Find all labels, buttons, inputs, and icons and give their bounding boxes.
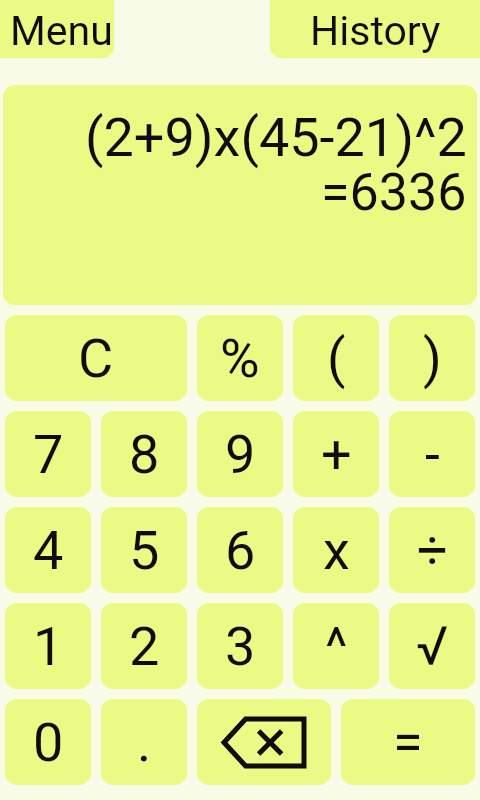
staticText: C (78, 327, 114, 390)
button[interactable]: Menu (0, 0, 114, 58)
staticText: √ (416, 615, 449, 678)
button[interactable]: % (197, 315, 283, 401)
staticText: ( (327, 327, 346, 390)
staticText: 9 (225, 423, 256, 486)
button[interactable]: 8 (101, 411, 187, 497)
button[interactable] (197, 699, 331, 785)
staticText: 6 (225, 519, 256, 582)
button[interactable]: 0 (5, 699, 91, 785)
staticText: x (323, 519, 350, 582)
staticText: ) (423, 327, 442, 390)
staticText: 1 (33, 615, 64, 678)
button[interactable]: + (293, 411, 379, 497)
staticText: ÷ (417, 519, 448, 582)
button[interactable]: 9 (197, 411, 283, 497)
button[interactable]: 6 (197, 507, 283, 593)
staticText: 3 (225, 615, 256, 678)
button[interactable]: = (341, 699, 475, 785)
staticText: 0 (33, 711, 64, 774)
staticText: History (310, 7, 441, 55)
button[interactable]: ÷ (389, 507, 475, 593)
button[interactable]: History (270, 0, 480, 58)
button[interactable]: 7 (5, 411, 91, 497)
staticText: 7 (33, 423, 64, 486)
staticText: 4 (33, 519, 64, 582)
staticText: = (393, 711, 423, 774)
button[interactable]: ^ (293, 603, 379, 689)
staticText: + (321, 423, 352, 486)
staticText: 2 (129, 615, 160, 678)
staticText: 5 (129, 519, 160, 582)
button[interactable]: 3 (197, 603, 283, 689)
button[interactable]: 2 (101, 603, 187, 689)
staticText: . (137, 711, 152, 774)
button[interactable]: 4 (5, 507, 91, 593)
staticText: Menu (10, 7, 113, 55)
button[interactable]: C (5, 315, 187, 401)
button[interactable]: x (293, 507, 379, 593)
button[interactable]: 5 (101, 507, 187, 593)
staticText: =6336 (321, 162, 467, 223)
button[interactable]: - (389, 411, 475, 497)
staticText: - (425, 423, 440, 486)
staticText: % (220, 327, 260, 390)
button[interactable]: ( (293, 315, 379, 401)
staticText: ^ (325, 615, 348, 678)
button[interactable]: 1 (5, 603, 91, 689)
button[interactable]: . (101, 699, 187, 785)
button[interactable]: ) (389, 315, 475, 401)
button[interactable]: √ (389, 603, 475, 689)
staticText: (2+9)x(45-21)^2 (85, 106, 467, 169)
staticText: 8 (129, 423, 160, 486)
